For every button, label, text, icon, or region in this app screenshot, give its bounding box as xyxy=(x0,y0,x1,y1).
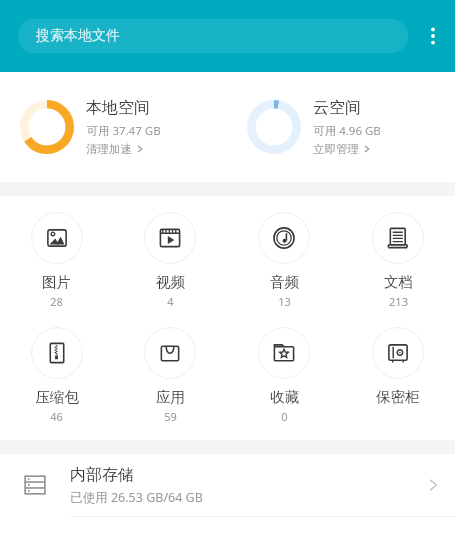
staticText: 应用 xyxy=(156,388,185,406)
staticText: 图片 xyxy=(42,273,71,291)
button[interactable]: 应用 xyxy=(113,327,227,424)
staticText: 保密柜 xyxy=(376,388,420,406)
staticText: 13 xyxy=(278,294,291,309)
staticText: 可用 4.96 GB xyxy=(313,123,381,139)
staticText: 音频 xyxy=(270,273,299,291)
staticText: 0 xyxy=(281,409,288,424)
button[interactable]: 云空间 xyxy=(227,72,455,182)
staticText: 收藏 xyxy=(270,388,299,406)
staticText: 46 xyxy=(50,409,63,424)
button[interactable]: 压缩包 xyxy=(0,327,113,424)
button[interactable]: 收藏 xyxy=(227,327,341,424)
button[interactable]: 搜索本地文件 xyxy=(18,19,408,53)
button[interactable]: More options xyxy=(411,14,455,58)
button[interactable]: Open internal storage xyxy=(411,463,455,507)
button[interactable]: 图片 xyxy=(0,212,113,309)
button[interactable]: 音频 xyxy=(227,212,341,309)
button[interactable]: 本地空间 xyxy=(0,72,227,182)
staticText: 213 xyxy=(389,294,408,309)
staticText: 28 xyxy=(50,294,63,309)
staticText: 搜索本地文件 xyxy=(36,27,120,45)
staticText: 已使用 26.53 GB/64 GB xyxy=(70,489,203,506)
button[interactable]: 保密柜 xyxy=(341,327,455,406)
staticText: 云空间 xyxy=(313,98,361,118)
staticText: 可用 37.47 GB xyxy=(86,123,161,139)
button[interactable]: 视频 xyxy=(113,212,227,309)
staticText: 文档 xyxy=(384,273,413,291)
staticText: 4 xyxy=(167,294,174,309)
button[interactable]: 内部存储 xyxy=(0,454,455,516)
staticText: 视频 xyxy=(156,273,185,291)
staticText: 立即管理 xyxy=(313,142,359,156)
button[interactable]: 文档 xyxy=(341,212,455,309)
staticText: 59 xyxy=(164,409,177,424)
staticText: 内部存储 xyxy=(70,465,134,485)
staticText: 压缩包 xyxy=(35,388,79,406)
staticText: 本地空间 xyxy=(86,98,150,118)
staticText: 清理加速 xyxy=(86,142,132,156)
